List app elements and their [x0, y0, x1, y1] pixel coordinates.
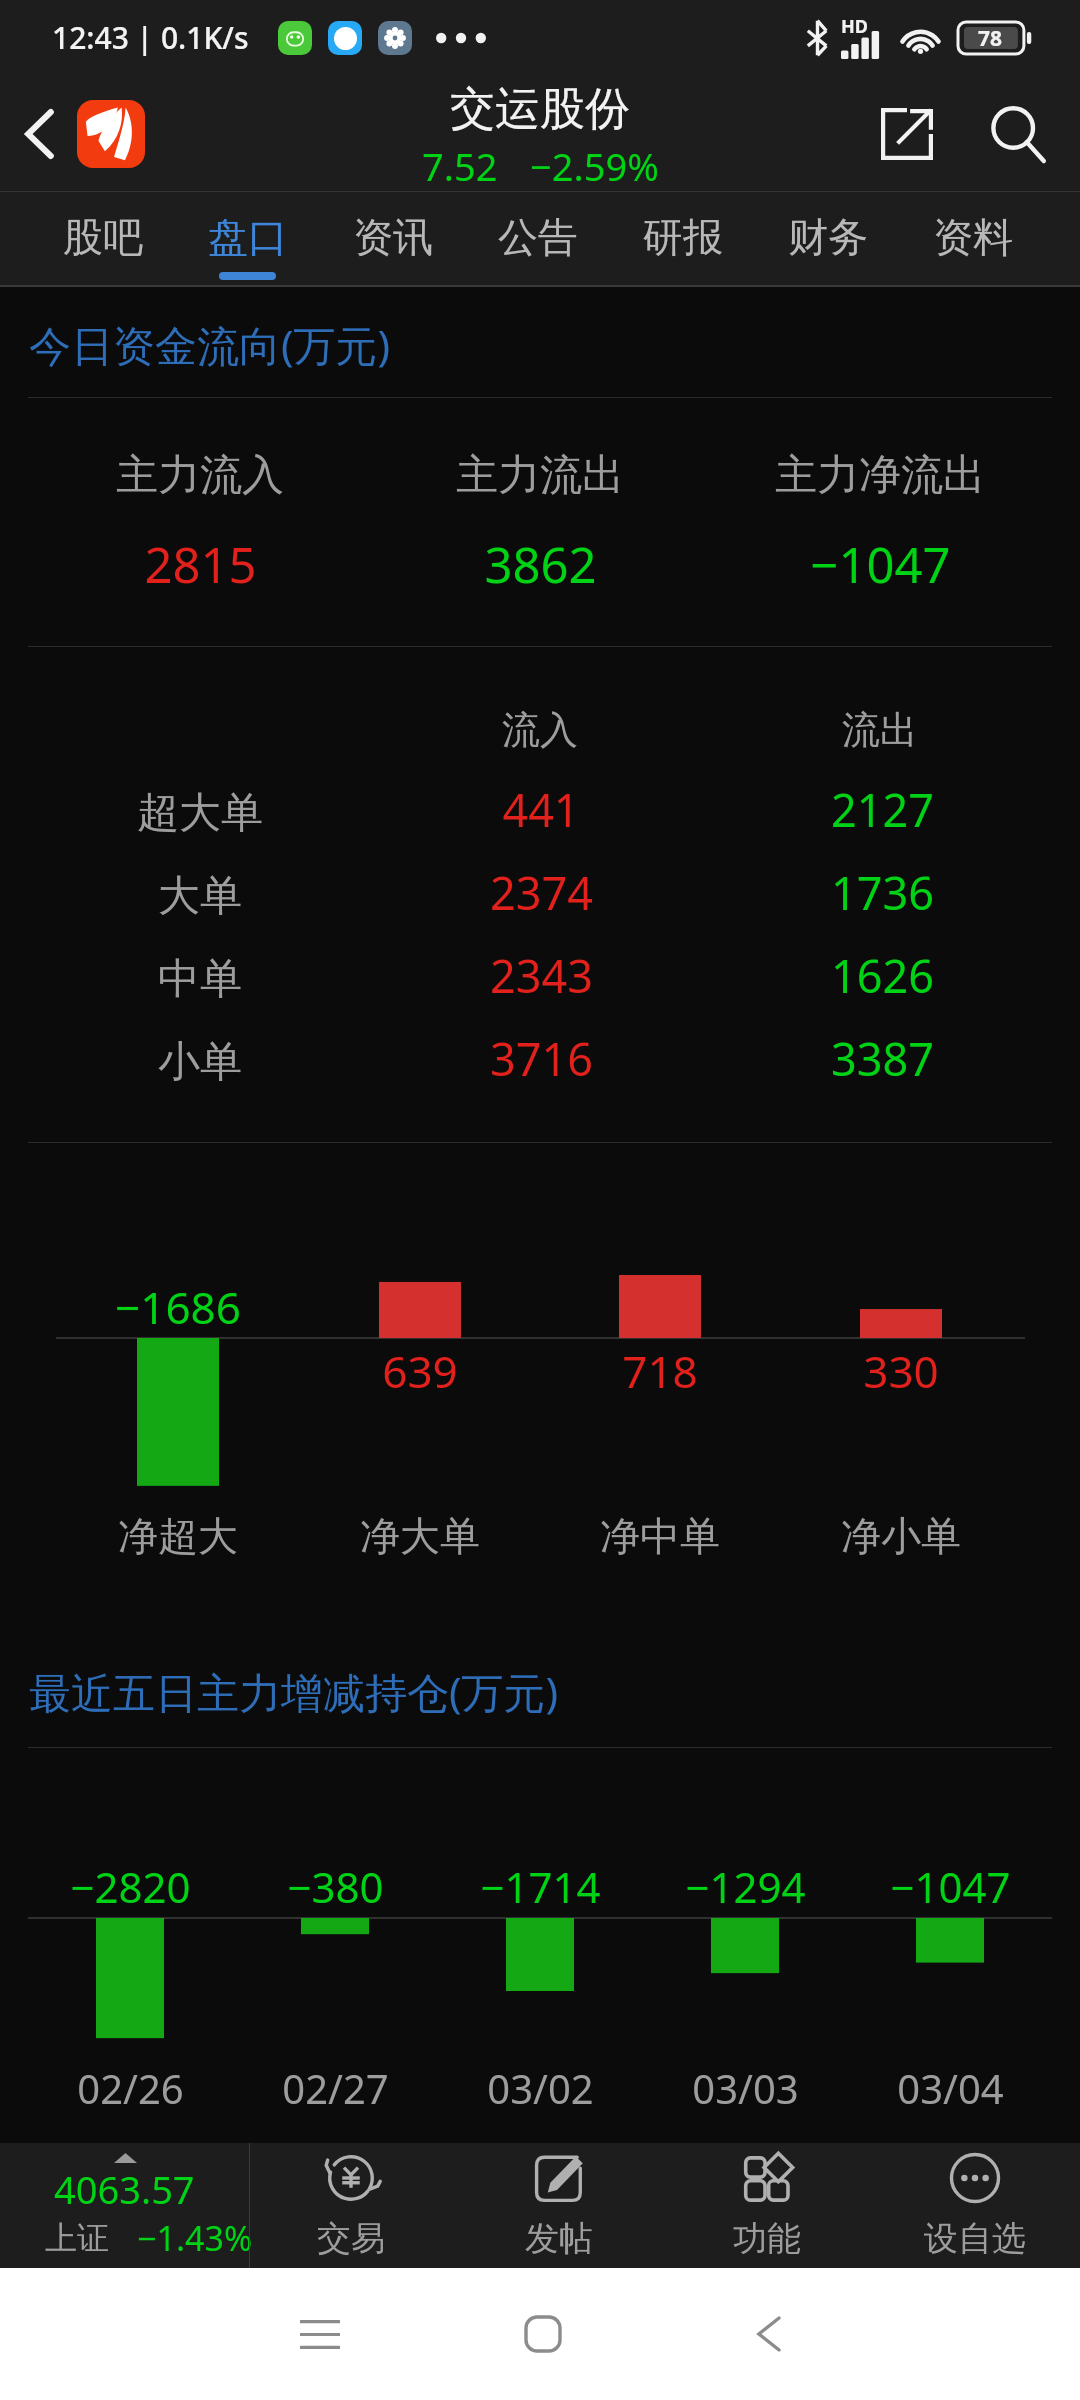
staticText: 公告 [498, 212, 578, 262]
button[interactable]: 设自选 [871, 2143, 1079, 2268]
staticText: 发帖 [525, 2217, 593, 2260]
button[interactable]: Eastmoney [77, 100, 145, 168]
staticText: 资料 [933, 212, 1013, 262]
button[interactable]: 发帖 [455, 2143, 663, 2268]
button[interactable]: Back [0, 75, 78, 192]
staticText: 设自选 [924, 2217, 1026, 2260]
staticText: 上证 [45, 2218, 109, 2258]
staticText: −1047 [810, 531, 951, 591]
staticText: 7.52 [422, 140, 498, 188]
staticText: 639 [382, 1341, 458, 1401]
staticText: −1714 [480, 1858, 601, 1915]
button[interactable]: Recents [280, 2268, 360, 2400]
staticText: 盘口 [208, 212, 288, 262]
staticText: 净中单 [600, 1511, 720, 1561]
button[interactable]: 4063.57 [0, 2143, 250, 2268]
button[interactable]: 资料 [900, 192, 1045, 287]
staticText: −2820 [70, 1858, 191, 1915]
button[interactable]: 股吧 [30, 192, 175, 287]
staticText: 02/26 [77, 2061, 184, 2115]
staticText: −1686 [115, 1277, 241, 1337]
staticText: 净小单 [841, 1511, 961, 1561]
button[interactable]: 资讯 [320, 192, 465, 287]
staticText: −2.59% [530, 140, 659, 188]
staticText: 441 [502, 779, 580, 839]
staticText: 股吧 [63, 212, 143, 262]
staticText: 交易 [317, 2217, 385, 2260]
staticText: 1626 [831, 945, 934, 1005]
staticText: −1047 [890, 1858, 1011, 1915]
staticText: 资讯 [353, 212, 433, 262]
button[interactable]: 功能 [663, 2143, 871, 2268]
staticText: 大单 [158, 870, 242, 923]
staticText: −380 [287, 1858, 384, 1915]
button[interactable]: Search [962, 75, 1074, 192]
staticText: 今日资金流向(万元) [29, 316, 391, 373]
staticText: HD [841, 14, 868, 39]
button[interactable]: 交易 [247, 2143, 455, 2268]
staticText: 财务 [788, 212, 868, 262]
button[interactable]: Home [503, 2268, 583, 2400]
staticText: 03/02 [487, 2061, 594, 2115]
staticText: 主力流出 [456, 449, 624, 502]
staticText: 净大单 [360, 1511, 480, 1561]
staticText: 02/27 [282, 2061, 389, 2115]
staticText: 2343 [490, 945, 593, 1005]
staticText: 最近五日主力增减持仓(万元) [29, 1663, 559, 1720]
staticText: 流出 [842, 706, 918, 754]
button[interactable]: Back [729, 2268, 809, 2400]
staticText: 330 [863, 1341, 939, 1401]
staticText: 功能 [733, 2217, 801, 2260]
staticText: 03/03 [692, 2061, 799, 2115]
staticText: 2815 [144, 531, 257, 591]
button[interactable]: 研报 [610, 192, 755, 287]
staticText: 小单 [158, 1036, 242, 1089]
button[interactable]: 财务 [755, 192, 900, 287]
staticText: 12:43 | 0.1K/s [52, 17, 249, 58]
staticText: 03/04 [897, 2061, 1004, 2115]
staticText: 3862 [484, 531, 597, 591]
button[interactable]: Share [852, 75, 962, 192]
staticText: 4063.57 [54, 2163, 195, 2215]
staticText: 净超大 [118, 1511, 238, 1561]
staticText: −1294 [685, 1858, 806, 1915]
staticText: 3716 [490, 1028, 593, 1088]
staticText: 中单 [158, 953, 242, 1006]
staticText: 超大单 [137, 787, 263, 840]
staticText: 交运股份 [450, 81, 630, 138]
staticText: −1.43% [137, 2215, 253, 2261]
staticText: 2127 [831, 779, 934, 839]
staticText: 718 [622, 1341, 698, 1401]
staticText: 主力流入 [116, 449, 284, 502]
button[interactable]: 盘口 [175, 192, 320, 287]
button[interactable]: 公告 [465, 192, 610, 287]
staticText: 3387 [831, 1028, 934, 1088]
staticText: 78 [978, 24, 1003, 53]
staticText: 主力净流出 [775, 449, 985, 502]
staticText: 研报 [643, 212, 723, 262]
staticText: 流入 [502, 706, 578, 754]
staticText: 1736 [831, 862, 934, 922]
staticText: 2374 [490, 862, 593, 922]
